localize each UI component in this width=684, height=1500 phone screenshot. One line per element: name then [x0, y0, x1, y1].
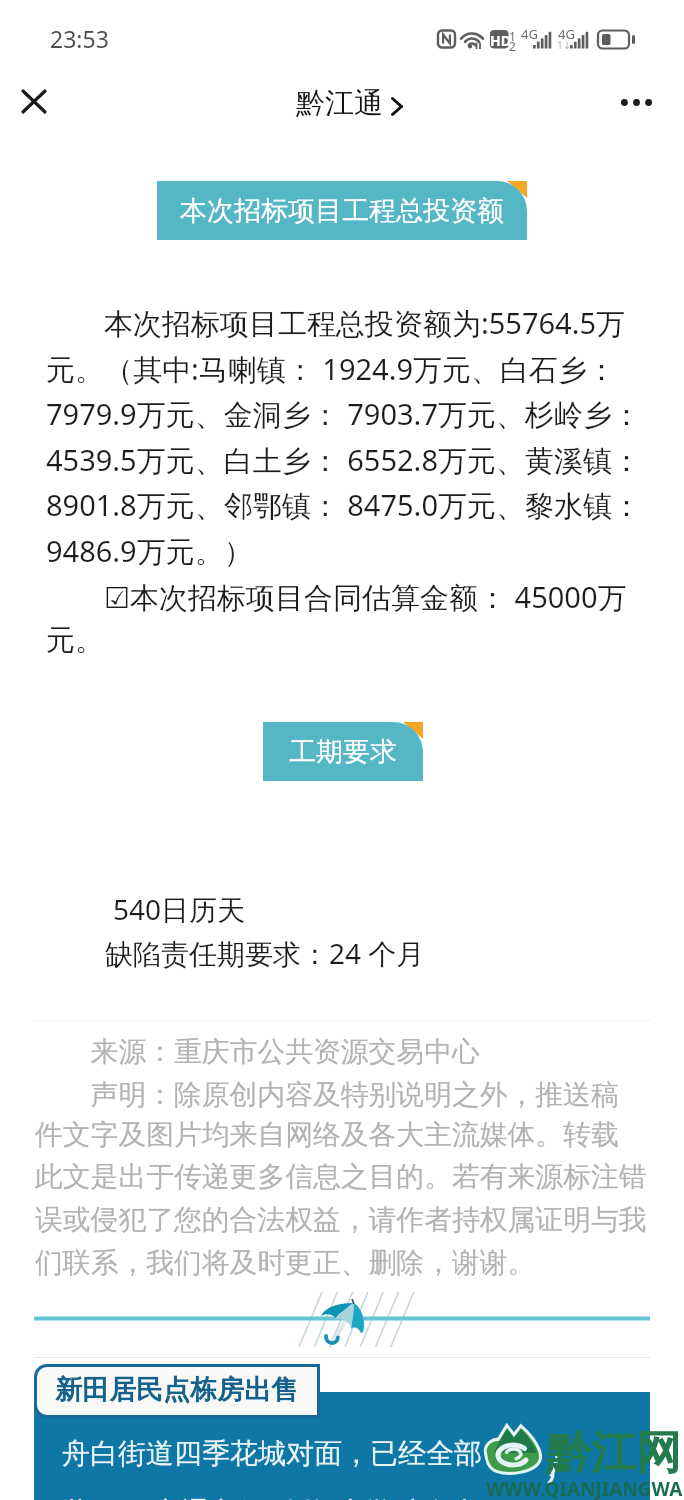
staticText: 误或侵犯了您的合法权益，请作者持权属证明与我	[35, 1202, 647, 1237]
staticText: ☑本次招标项目合同估算金额： 45000万	[46, 577, 627, 617]
staticText: WWW.QIANJIANGWANG.COM	[486, 1476, 684, 1500]
staticText: 1	[509, 28, 516, 44]
staticText: 元。（其中:马喇镇： 1924.9万元、白石乡：	[46, 349, 617, 389]
button[interactable]: 黔江通	[296, 85, 403, 122]
staticText: 4539.5万元、白土乡： 6552.8万元、黄溪镇：	[46, 440, 641, 480]
button[interactable]: More options	[606, 72, 666, 132]
staticText: 件文字及图片均来自网络及各大主流媒体。转载	[35, 1117, 619, 1152]
staticText: 声明：除原创内容及特别说明之外，推送稿	[35, 1074, 619, 1112]
staticText: 9486.9万元。）	[46, 531, 253, 571]
button[interactable]	[34, 1392, 650, 1500]
staticText: 540日历天	[113, 890, 246, 928]
staticText: 们联系，我们将及时更正、删除，谢谢。	[35, 1245, 536, 1280]
staticText: 元。	[46, 622, 104, 659]
button[interactable]: 新田居民点栋房出售	[37, 1367, 317, 1415]
staticText: 23:53	[50, 23, 109, 54]
staticText: 8901.8万元、邻鄂镇： 8475.0万元、黎水镇：	[46, 485, 641, 525]
staticText: 2	[509, 38, 516, 54]
staticText: 来源：重庆市公共资源交易中心	[35, 1031, 480, 1069]
staticText: 缺陷责任期要求：24 个月	[105, 934, 425, 972]
staticText: 舟白街道四季花城对面，已经全部	[62, 1436, 482, 1471]
staticText: 1↓	[557, 38, 572, 52]
staticText: 工期要求	[289, 735, 397, 769]
button[interactable]: Close	[4, 71, 64, 131]
staticText: 本次招标项目工程总投资额为:55764.5万	[46, 303, 626, 343]
staticText: HD	[490, 31, 511, 50]
staticText: 7979.9万元、金洞乡： 7903.7万元、杉岭乡：	[46, 394, 641, 434]
staticText: 黔江通	[296, 85, 383, 122]
staticText: 此文是出于传递更多信息之目的。若有来源标注错	[35, 1159, 647, 1194]
staticText: 黔江网	[546, 1425, 681, 1482]
staticText: 装修好,交通方便,购物,上学,出行都	[62, 1492, 485, 1500]
staticText: 新田居民点栋房出售	[55, 1373, 298, 1407]
staticText: 4G	[521, 25, 538, 43]
staticText: 4G	[558, 25, 575, 43]
staticText: 本次招标项目工程总投资额	[180, 194, 504, 228]
